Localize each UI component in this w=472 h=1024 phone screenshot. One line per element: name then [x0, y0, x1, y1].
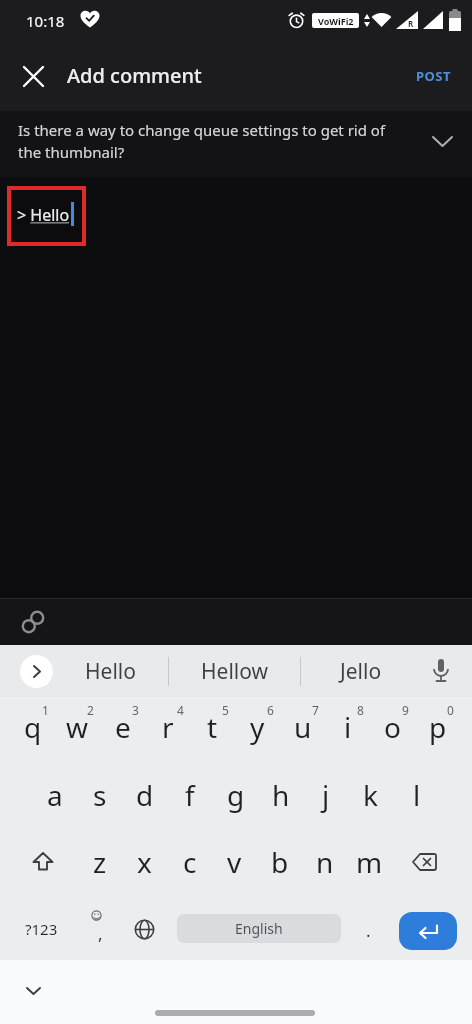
- button[interactable]: w: [55, 694, 100, 760]
- button[interactable]: m: [347, 829, 392, 894]
- button[interactable]: Hello: [62, 650, 158, 692]
- button[interactable]: k: [348, 762, 393, 827]
- button[interactable]: j: [303, 762, 348, 827]
- button[interactable]: i: [325, 694, 370, 760]
- staticText: f: [185, 776, 195, 814]
- staticText: n: [316, 843, 334, 881]
- staticText: c: [183, 843, 197, 881]
- button[interactable]: POST: [404, 58, 464, 94]
- button[interactable]: d: [122, 762, 167, 827]
- button[interactable]: s: [77, 762, 122, 827]
- staticText: k: [363, 776, 378, 814]
- button[interactable]: g: [213, 762, 258, 827]
- button[interactable]: .: [352, 902, 384, 958]
- button[interactable]: [14, 603, 52, 641]
- button[interactable]: u: [280, 694, 325, 760]
- staticText: 8: [357, 702, 364, 718]
- button[interactable]: b: [257, 829, 302, 894]
- button[interactable]: v: [212, 829, 257, 894]
- button[interactable]: y: [235, 694, 280, 760]
- staticText: Hello: [85, 657, 136, 686]
- staticText: x: [137, 843, 152, 881]
- staticText: t: [207, 708, 218, 746]
- button[interactable]: [20, 655, 53, 688]
- staticText: j: [322, 776, 330, 814]
- staticText: s: [93, 776, 107, 814]
- staticText: 1: [42, 702, 49, 718]
- button[interactable]: English: [177, 914, 341, 943]
- staticText: m: [356, 843, 383, 881]
- staticText: 0: [447, 702, 454, 718]
- staticText: q: [24, 708, 42, 746]
- staticText: .: [366, 919, 371, 942]
- button[interactable]: c: [167, 829, 212, 894]
- button[interactable]: t: [190, 694, 235, 760]
- button[interactable]: [77, 896, 121, 962]
- button[interactable]: p: [415, 694, 460, 760]
- staticText: u: [294, 708, 312, 746]
- staticText: e: [115, 708, 131, 746]
- button[interactable]: n: [302, 829, 347, 894]
- button[interactable]: [399, 912, 457, 950]
- staticText: a: [47, 776, 63, 814]
- staticText: z: [93, 843, 107, 881]
- button[interactable]: [401, 829, 447, 894]
- staticText: POST: [416, 67, 452, 85]
- staticText: 7: [312, 702, 319, 718]
- staticText: o: [384, 708, 401, 746]
- button[interactable]: a: [32, 762, 77, 827]
- staticText: Hellow: [201, 657, 269, 686]
- button[interactable]: e: [100, 694, 145, 760]
- staticText: ,: [98, 922, 103, 945]
- staticText: l: [413, 776, 421, 814]
- staticText: 9: [402, 702, 409, 718]
- staticText: w: [66, 708, 89, 746]
- staticText: h: [272, 776, 290, 814]
- button[interactable]: [20, 829, 66, 894]
- button[interactable]: [14, 57, 52, 95]
- staticText: i: [344, 708, 352, 746]
- staticText: 10:18: [26, 11, 65, 31]
- button[interactable]: [424, 652, 458, 690]
- button[interactable]: r: [145, 694, 190, 760]
- staticText: 4: [177, 702, 184, 718]
- staticText: d: [136, 776, 154, 814]
- staticText: R: [408, 18, 414, 29]
- button[interactable]: q: [10, 694, 55, 760]
- staticText: Is there a way to change queue settings …: [18, 120, 386, 163]
- button[interactable]: Jello: [313, 650, 409, 692]
- staticText: v: [227, 843, 242, 881]
- staticText: 6: [267, 702, 274, 718]
- staticText: r: [162, 708, 174, 746]
- button[interactable]: l: [394, 762, 439, 827]
- button[interactable]: [124, 896, 165, 962]
- staticText: 2: [87, 702, 94, 718]
- button[interactable]: f: [167, 762, 212, 827]
- staticText: > Hello: [17, 204, 70, 226]
- button[interactable]: [15, 976, 51, 1006]
- staticText: 3: [132, 702, 139, 718]
- staticText: English: [235, 919, 283, 938]
- button[interactable]: [424, 126, 460, 158]
- staticText: g: [227, 776, 245, 814]
- button[interactable]: h: [258, 762, 303, 827]
- staticText: 5: [222, 702, 229, 718]
- button[interactable]: ?123: [18, 896, 64, 962]
- staticText: ?123: [25, 919, 58, 939]
- staticText: Add comment: [67, 62, 202, 89]
- button[interactable]: x: [122, 829, 167, 894]
- staticText: b: [271, 843, 289, 881]
- staticText: Jello: [340, 657, 382, 686]
- button[interactable]: z: [77, 829, 122, 894]
- staticText: p: [429, 708, 447, 746]
- button[interactable]: o: [370, 694, 415, 760]
- staticText: VoWiFi2: [318, 15, 354, 27]
- staticText: y: [250, 708, 265, 746]
- button[interactable]: Hellow: [187, 650, 283, 692]
